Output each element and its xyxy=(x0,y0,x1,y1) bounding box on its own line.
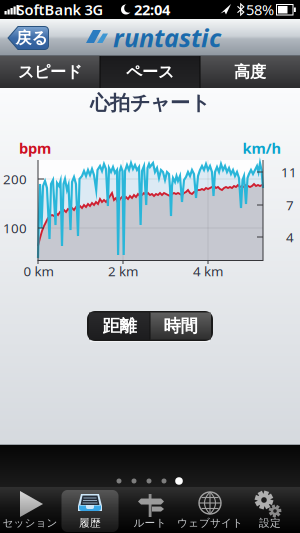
button[interactable]: 高度 xyxy=(200,56,300,88)
staticText: runtastic xyxy=(113,21,221,54)
staticText: 7 xyxy=(286,196,294,214)
button[interactable]: ウェブサイト xyxy=(180,487,240,533)
staticText: 設定 xyxy=(259,516,281,529)
staticText: 4 km xyxy=(193,262,223,280)
staticText: 時間 xyxy=(163,315,197,337)
staticText: 0 km xyxy=(23,262,53,280)
button[interactable]: 戻る xyxy=(7,25,50,51)
staticText: SoftBank xyxy=(16,0,81,19)
staticText: 戻る xyxy=(15,28,47,48)
button[interactable]: セッション xyxy=(0,487,60,533)
staticText: 100 xyxy=(3,219,27,237)
staticText: セッション xyxy=(2,516,57,529)
staticText: bpm xyxy=(19,138,51,158)
staticText: km/h xyxy=(242,138,281,158)
staticText: 履歴 xyxy=(79,516,101,529)
staticText: 2 km xyxy=(108,262,138,280)
button[interactable]: スピード xyxy=(0,56,100,88)
staticText: スピード xyxy=(18,62,82,82)
staticText: 11 xyxy=(281,163,297,181)
staticText: 心拍チャート xyxy=(90,91,210,115)
staticText: ペース xyxy=(126,62,174,82)
button[interactable]: ペース xyxy=(100,56,200,88)
staticText: ウェブサイト xyxy=(177,516,243,529)
button[interactable]: 時間 xyxy=(150,312,211,339)
staticText: 距離 xyxy=(102,315,136,337)
staticText: 4 xyxy=(286,228,294,246)
button[interactable]: 履歴 xyxy=(60,487,120,533)
button[interactable]: 距離 xyxy=(89,312,150,339)
staticText: 高度 xyxy=(234,62,266,82)
staticText: 58% xyxy=(246,0,274,19)
button[interactable]: 設定 xyxy=(240,487,300,533)
staticText: ルート xyxy=(133,516,166,529)
staticText: 200 xyxy=(3,170,27,188)
staticText: 22:04 xyxy=(134,0,170,19)
button[interactable]: ルート xyxy=(120,487,180,533)
staticText: 3G xyxy=(84,0,103,19)
